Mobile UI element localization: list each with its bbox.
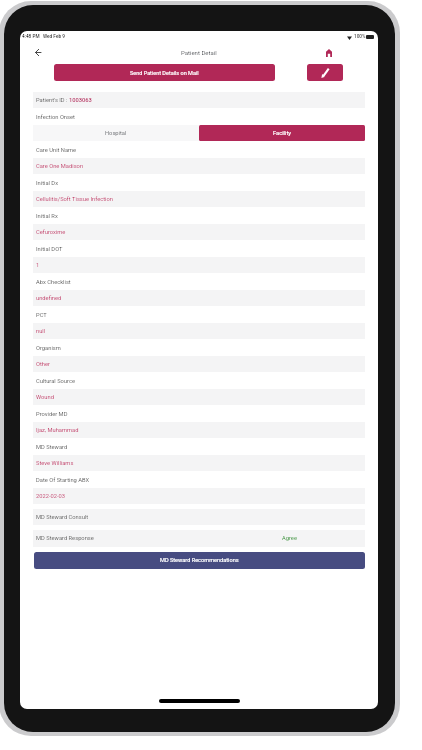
button[interactable]: MD Steward Recommendations [34, 552, 365, 569]
staticText: Patient's ID : [36, 97, 69, 104]
staticText: Initial Rx [36, 213, 58, 220]
staticText: Organism [36, 345, 61, 352]
staticText: 100% [354, 34, 366, 40]
staticText: Care Unit Name [36, 147, 77, 154]
button[interactable]: Send Patient Details on Mail [54, 64, 275, 81]
staticText: Ijaz, Muhammad [36, 427, 79, 434]
staticText: Wound [36, 394, 54, 401]
staticText: undefined [36, 295, 62, 302]
staticText: 4:48 PM [22, 34, 40, 40]
staticText: Cultural Source [36, 378, 75, 385]
staticText: Cefuroxime [36, 229, 66, 236]
staticText: Abx Checklist [36, 279, 71, 286]
staticText: Other [36, 361, 51, 368]
staticText: Date Of Starting ABX [36, 477, 90, 484]
staticText: MD Steward Recommendations [160, 557, 239, 564]
staticText: Infection Onset [36, 114, 75, 121]
staticText: 2022-02-03 [36, 493, 66, 500]
staticText: MD Steward Response [36, 535, 94, 542]
staticText: Provider MD [36, 411, 68, 418]
button[interactable]: Hospital [33, 125, 199, 141]
staticText: PCT [36, 312, 47, 319]
button[interactable]: Back [30, 44, 46, 60]
staticText: Care One Madison [36, 163, 84, 170]
button[interactable]: Facility [199, 125, 365, 141]
staticText: MD Steward Consult [36, 514, 89, 521]
staticText: Wed Feb 9 [43, 34, 65, 40]
staticText: Send Patient Details on Mail [130, 70, 199, 76]
staticText: Initial Dx [36, 180, 58, 187]
staticText: Patient Detail [181, 49, 217, 56]
staticText: Facility [273, 130, 292, 137]
staticText: MD Steward [36, 444, 68, 451]
staticText: 1 [36, 262, 40, 269]
button[interactable]: Home [321, 45, 337, 61]
staticText: Cellulitis/Soft Tissue Infection [36, 196, 113, 203]
staticText: 1003063 [69, 97, 92, 104]
staticText: Hospital [105, 130, 127, 137]
staticText: null [36, 328, 46, 335]
button[interactable]: Edit [307, 64, 343, 81]
staticText: Steve Williams [36, 460, 74, 467]
staticText: Initial DOT [36, 246, 63, 253]
staticText: Agree [282, 535, 297, 542]
